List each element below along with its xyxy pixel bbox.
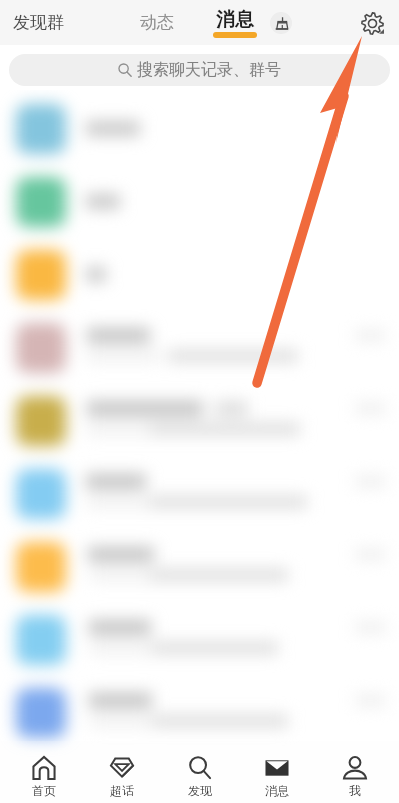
staticText: 消息 bbox=[216, 8, 254, 32]
button[interactable]: 动态 bbox=[140, 12, 174, 33]
button[interactable]: 超话 bbox=[88, 756, 156, 798]
staticText: 超话 bbox=[110, 783, 134, 798]
staticText: 消息 bbox=[265, 783, 289, 798]
staticText: 搜索聊天记录、群号 bbox=[137, 60, 281, 80]
button[interactable]: 搜索聊天记录、群号 bbox=[9, 54, 390, 86]
button[interactable]: Settings bbox=[359, 10, 385, 36]
button[interactable]: 首页 bbox=[10, 756, 78, 798]
staticText: 发现 bbox=[188, 783, 212, 798]
button[interactable]: 我 bbox=[321, 756, 389, 798]
button[interactable]: 发现 bbox=[166, 756, 234, 798]
button[interactable]: 发现群 bbox=[0, 12, 70, 33]
button[interactable]: Clear messages bbox=[270, 12, 292, 34]
staticText: 动态 bbox=[140, 12, 174, 33]
staticText: 我 bbox=[349, 783, 361, 798]
button[interactable]: 消息 bbox=[213, 8, 257, 38]
button[interactable]: 消息 bbox=[243, 756, 311, 798]
staticText: 发现群 bbox=[13, 12, 64, 33]
staticText: 首页 bbox=[32, 783, 56, 798]
